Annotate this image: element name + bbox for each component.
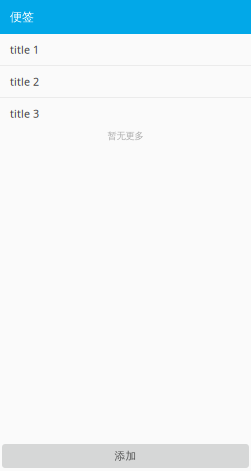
button[interactable]: title 1: [0, 34, 251, 65]
button[interactable]: 添加: [2, 444, 249, 468]
button[interactable]: title 2: [0, 66, 251, 97]
staticText: 便签: [10, 10, 34, 24]
staticText: title 2: [10, 74, 39, 89]
button[interactable]: title 3: [0, 98, 251, 129]
staticText: 暂无更多: [107, 130, 143, 142]
staticText: 添加: [114, 449, 136, 462]
staticText: title 3: [10, 106, 39, 121]
staticText: title 1: [10, 42, 39, 57]
